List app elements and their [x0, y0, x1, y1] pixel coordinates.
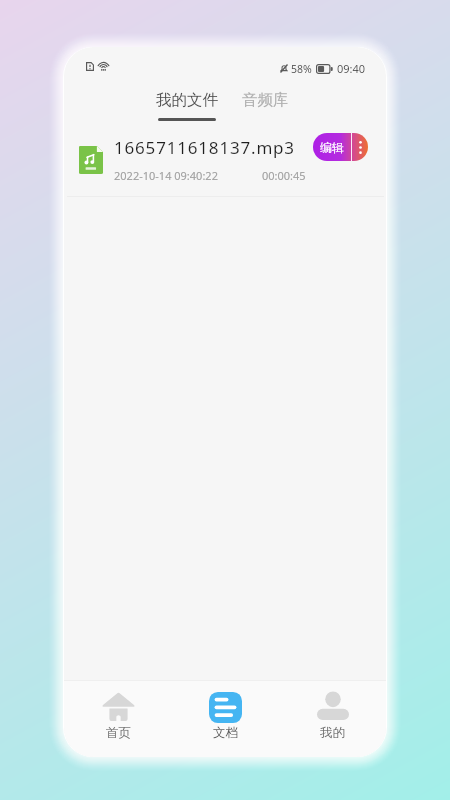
- staticText: 首页: [106, 725, 131, 741]
- button[interactable]: 我的文件: [154, 87, 220, 121]
- staticText: 00:00:45: [262, 168, 306, 183]
- staticText: 09:40: [337, 61, 366, 76]
- button[interactable]: 编辑: [313, 133, 368, 161]
- button[interactable]: 文档: [172, 681, 279, 757]
- staticText: 音频库: [242, 90, 289, 110]
- staticText: 文档: [213, 725, 238, 741]
- button[interactable]: 我的: [279, 681, 386, 757]
- button[interactable]: 首页: [64, 681, 172, 757]
- button[interactable]: 1665711618137.mp3: [64, 124, 386, 197]
- staticText: 2022-10-14 09:40:22: [114, 168, 218, 183]
- button[interactable]: 音频库: [240, 87, 291, 110]
- staticText: 我的: [320, 725, 345, 741]
- other: More options: [352, 133, 368, 161]
- staticText: 58%: [291, 62, 312, 76]
- staticText: 1665711618137.mp3: [114, 136, 295, 159]
- staticText: 我的文件: [156, 90, 218, 110]
- staticText: 编辑: [320, 140, 344, 155]
